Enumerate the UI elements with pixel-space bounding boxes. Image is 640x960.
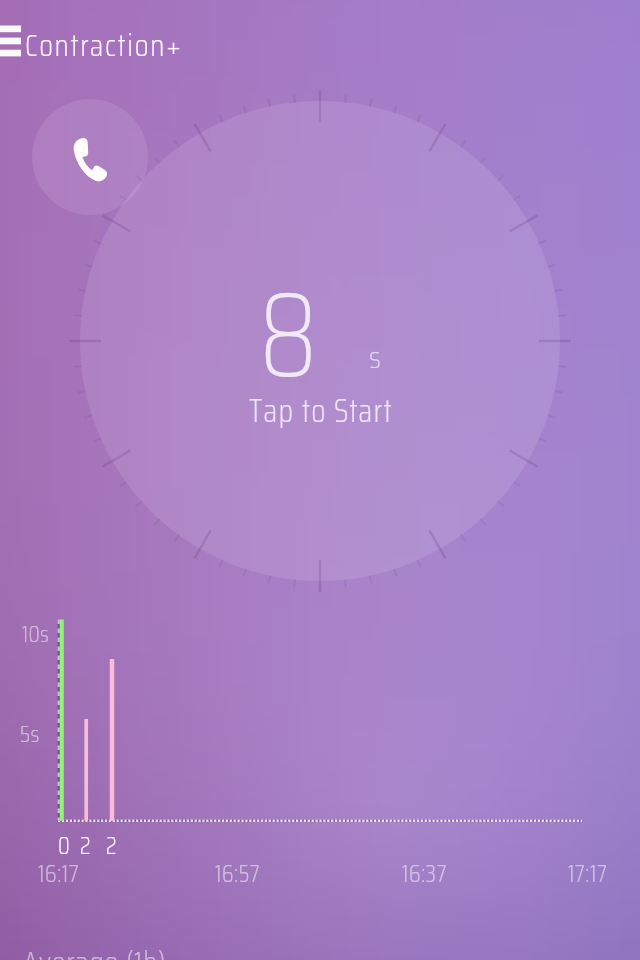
staticText: 16:37 — [402, 855, 447, 893]
staticText: s — [369, 333, 381, 382]
staticText: Contraction+ — [25, 21, 183, 70]
button[interactable]: Open navigation menu — [0, 22, 21, 60]
staticText: 16:57 — [215, 855, 261, 893]
staticText: 8 — [259, 241, 318, 428]
staticText: 0 — [58, 827, 70, 865]
staticText: 2 — [80, 827, 91, 865]
button[interactable]: Call — [32, 99, 148, 215]
staticText: 16:17 — [38, 855, 80, 893]
staticText: 2 — [106, 827, 117, 865]
staticText: 17:17 — [568, 855, 608, 893]
staticText: Average (1h) — [23, 938, 167, 960]
staticText: 5s — [20, 716, 40, 752]
staticText: 10s — [22, 616, 50, 652]
staticText: Tap to Start — [249, 386, 394, 436]
